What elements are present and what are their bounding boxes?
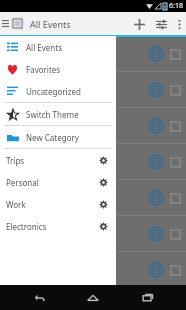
button[interactable]: Work	[0, 193, 116, 215]
button[interactable]: Uncategorized	[0, 80, 116, 102]
staticText: All Events	[26, 42, 63, 53]
button[interactable]: Filter settings	[150, 13, 172, 35]
button[interactable]: Electronics	[0, 215, 116, 237]
button[interactable]: New Category	[0, 126, 116, 148]
other: Edit Work	[97, 198, 109, 210]
button[interactable]: Back	[24, 285, 54, 310]
staticText: 6:18	[169, 1, 183, 11]
button[interactable]: Home	[78, 285, 108, 310]
button[interactable]	[0, 108, 186, 144]
button[interactable]	[0, 216, 186, 252]
button[interactable]	[0, 252, 186, 288]
button[interactable]: Switch Theme	[0, 103, 116, 125]
button[interactable]	[0, 72, 186, 108]
staticText: Trips	[6, 155, 25, 166]
staticText: All Events	[30, 18, 71, 30]
button[interactable]	[0, 36, 186, 72]
other: Edit Trips	[97, 154, 109, 166]
staticText: New Category	[26, 132, 79, 143]
staticText: Work	[6, 199, 26, 210]
button[interactable]	[0, 144, 186, 180]
button[interactable]	[0, 180, 186, 216]
staticText: Favorites	[26, 64, 61, 75]
staticText: Uncategorized	[26, 86, 81, 97]
button[interactable]: All Events	[0, 36, 116, 58]
staticText: Electronics	[6, 221, 47, 232]
button[interactable]: Personal	[0, 171, 116, 193]
button[interactable]: Favorites	[0, 58, 116, 80]
button[interactable]: Add	[128, 13, 150, 35]
other: Edit Personal	[97, 176, 109, 188]
button[interactable]: Open navigation drawer	[0, 17, 27, 30]
staticText: Switch Theme	[26, 109, 79, 120]
other: Edit Electronics	[97, 220, 109, 232]
button[interactable]: More options	[172, 13, 186, 35]
button[interactable]: Recent apps	[132, 285, 162, 310]
staticText: Personal	[6, 177, 39, 188]
button[interactable]: Trips	[0, 149, 116, 171]
